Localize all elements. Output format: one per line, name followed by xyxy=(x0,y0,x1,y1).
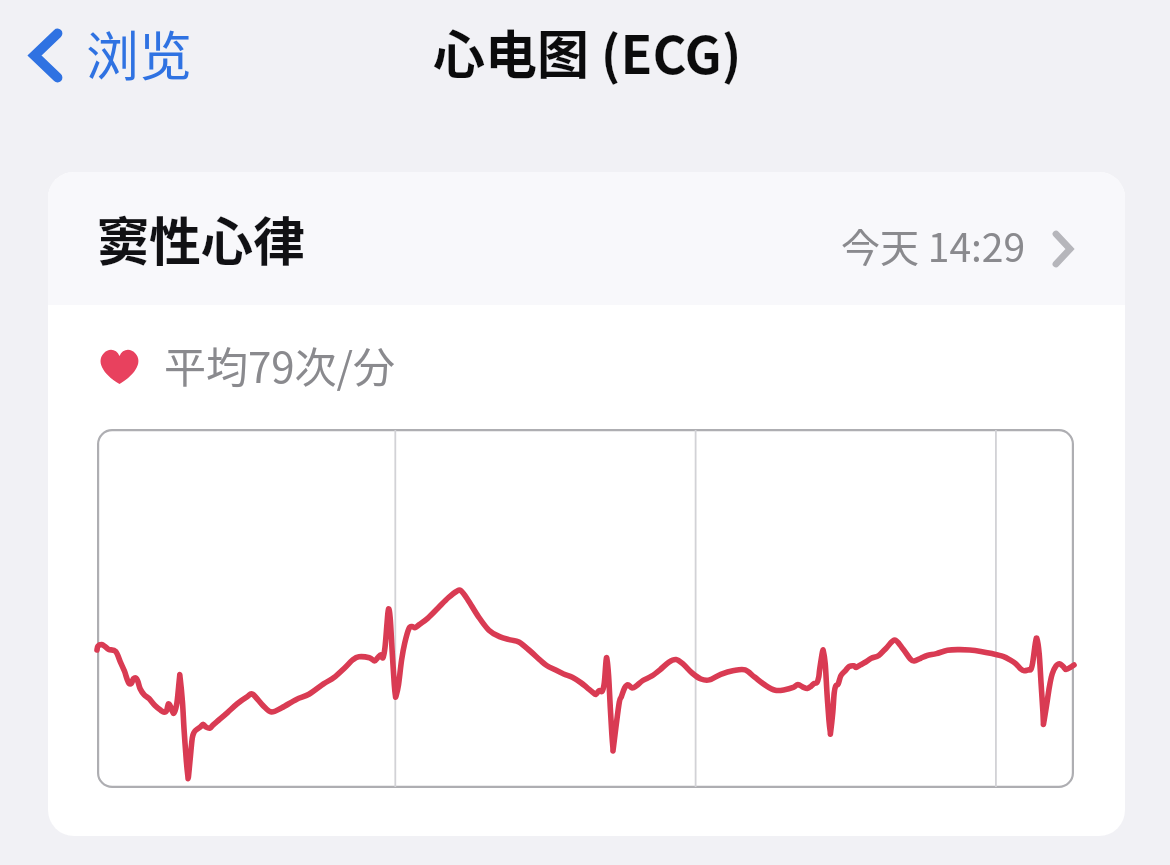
staticText: 心电图 (ECG) xyxy=(433,14,742,89)
other: Open ECG details xyxy=(1052,230,1074,268)
staticText: 今天 14:29 xyxy=(841,217,1026,273)
button[interactable]: Back xyxy=(23,11,198,100)
staticText: 窦性心律 xyxy=(97,201,306,276)
staticText: 浏览 xyxy=(86,15,192,92)
other: Back xyxy=(29,28,63,83)
staticText: 平均79次/分 xyxy=(164,334,396,395)
button[interactable]: ECG waveform, 30 seconds xyxy=(97,429,1074,788)
button[interactable]: 窦性心律 xyxy=(48,172,1125,305)
